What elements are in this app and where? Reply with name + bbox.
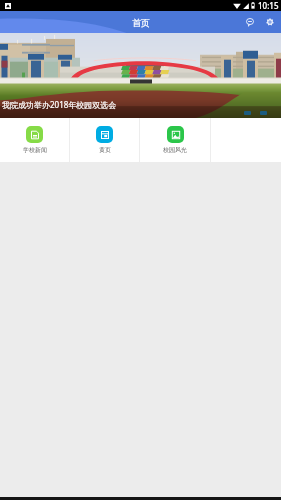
button[interactable]: Messages [242,14,258,30]
staticText: 校园风光 [163,146,187,154]
button[interactable]: Settings [262,14,278,30]
staticText: 我院成功举办2018年校园双选会 [2,99,117,110]
staticText: 黄页 [99,146,111,154]
button[interactable]: 学校新闻 [0,118,69,162]
button[interactable]: 校园风光 [140,118,210,162]
button[interactable]: 黄页 [70,118,139,162]
staticText: 学校新闻 [23,146,47,154]
staticText: 10:15 [258,0,279,11]
staticText: 首页 [132,17,150,28]
button[interactable]: 我院成功举办2018年校园双选会 [0,33,281,118]
